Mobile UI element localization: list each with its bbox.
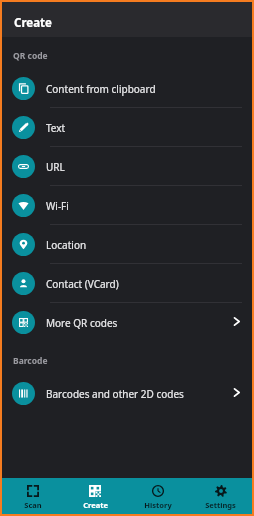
staticText: Text	[46, 121, 66, 135]
staticText: Settings	[205, 500, 236, 510]
button[interactable]: Create	[64, 478, 126, 514]
button[interactable]: Scan	[2, 478, 64, 514]
button[interactable]: Contact (VCard)	[2, 264, 252, 303]
staticText: Create	[83, 500, 108, 510]
button[interactable]: Content from clipboard	[2, 69, 252, 108]
staticText: Barcodes and other 2D codes	[46, 387, 184, 401]
staticText: Create	[14, 15, 52, 31]
staticText: Location	[46, 238, 87, 252]
button[interactable]: Settings	[189, 478, 252, 514]
staticText: Content from clipboard	[46, 82, 156, 96]
staticText: More QR codes	[46, 316, 118, 330]
staticText: History	[144, 500, 172, 510]
staticText: QR code	[13, 50, 48, 62]
button[interactable]: Wi-Fi	[2, 186, 252, 225]
staticText: Barcode	[13, 355, 48, 367]
button[interactable]: Text	[2, 108, 252, 147]
staticText: Contact (VCard)	[46, 277, 119, 291]
button[interactable]: History	[126, 478, 189, 514]
button[interactable]: More QR codes	[2, 303, 252, 342]
button[interactable]: Barcodes and other 2D codes	[2, 374, 252, 413]
staticText: URL	[46, 160, 65, 174]
staticText: Wi-Fi	[46, 199, 69, 213]
button[interactable]: Location	[2, 225, 252, 264]
button[interactable]: URL	[2, 147, 252, 186]
staticText: Scan	[24, 500, 42, 510]
